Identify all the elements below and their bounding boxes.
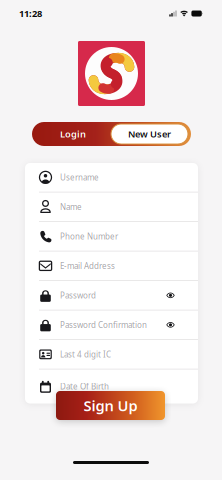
button[interactable]: New User (111, 124, 188, 144)
staticText: Username (60, 172, 99, 183)
button[interactable]: Show Password Confirmation (166, 320, 175, 329)
staticText: Login (60, 128, 86, 140)
button[interactable]: Sign Up (56, 391, 165, 420)
staticText: Name (60, 201, 82, 212)
staticText: Phone Number (60, 231, 118, 242)
staticText: Password Confirmation (60, 319, 147, 330)
button[interactable]: Show Password (166, 291, 175, 300)
staticText: Password (60, 290, 96, 301)
staticText: Last 4 digit IC (60, 349, 111, 360)
staticText: New User (128, 128, 171, 140)
staticText: Sign Up (83, 396, 137, 415)
staticText: Date Of Birth (60, 381, 109, 392)
staticText: 11:28 (19, 7, 42, 20)
staticText: E-mail Address (60, 260, 115, 271)
button[interactable]: Login (35, 124, 111, 144)
